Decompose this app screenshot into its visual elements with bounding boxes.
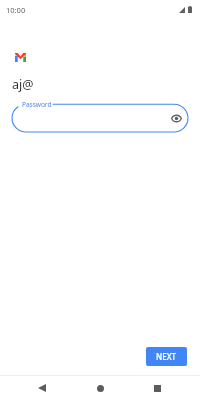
- staticText: NEXT: [156, 351, 177, 362]
- staticText: aj@: [12, 76, 34, 93]
- staticText: 10:00: [6, 5, 26, 15]
- staticText: Password: [22, 100, 52, 109]
- button[interactable]: Recents: [141, 376, 173, 400]
- button[interactable]: Back: [26, 376, 58, 400]
- button[interactable]: NEXT: [146, 347, 187, 366]
- button[interactable]: Show password: [168, 110, 184, 126]
- button[interactable]: Home: [84, 376, 116, 400]
